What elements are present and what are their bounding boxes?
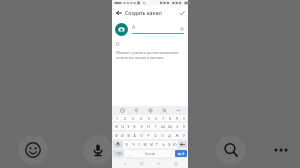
button[interactable]: Back: [120, 159, 129, 168]
button[interactable]: А: [131, 132, 138, 139]
button[interactable]: У: [125, 123, 131, 130]
staticText: 0: [183, 116, 185, 121]
staticText: 2: [124, 116, 126, 121]
button[interactable]: Ч: [130, 141, 136, 148]
button[interactable]: Home: [137, 159, 146, 168]
button[interactable]: Р: [145, 132, 152, 139]
button[interactable]: Backspace: [178, 141, 187, 148]
button[interactable]: A: [132, 24, 184, 34]
button[interactable]: 0: [180, 115, 187, 121]
button[interactable]: 8: [166, 115, 173, 121]
button[interactable]: ,: [124, 150, 132, 157]
button[interactable]: .: [167, 150, 175, 157]
button[interactable]: Д: [166, 132, 173, 139]
button[interactable]: Х: [180, 123, 187, 130]
button[interactable]: 5: [145, 115, 152, 121]
staticText: Ы: [121, 133, 124, 138]
button[interactable]: Л: [159, 132, 166, 139]
button[interactable]: 4: [137, 115, 145, 121]
button[interactable]: Русский: [132, 150, 167, 157]
staticText: 7: [162, 116, 164, 121]
button[interactable]: П: [138, 132, 145, 139]
staticText: И: [150, 142, 153, 147]
button[interactable]: Done: [175, 6, 188, 19]
button[interactable]: Shift: [113, 141, 123, 148]
button[interactable]: Ш: [159, 123, 166, 130]
button[interactable]: О: [152, 132, 159, 139]
button[interactable]: 9: [173, 115, 180, 121]
button[interactable]: Г: [152, 123, 159, 130]
staticText: Е: [141, 124, 143, 129]
staticText: Й: [115, 124, 118, 129]
button[interactable]: Reactions: [18, 135, 48, 165]
button[interactable]: Б: [166, 141, 172, 148]
button[interactable]: 3: [129, 115, 137, 121]
button[interactable]: Ы: [119, 132, 125, 139]
button[interactable]: Щ: [166, 123, 173, 130]
button[interactable]: С: [136, 141, 142, 148]
button[interactable]: Я: [123, 141, 130, 148]
button[interactable]: More options: [266, 135, 296, 165]
button[interactable]: Ц: [119, 123, 125, 130]
staticText: Х: [183, 124, 185, 129]
button[interactable]: К: [131, 123, 138, 130]
button[interactable]: Ь: [160, 141, 166, 148]
button[interactable]: 2: [121, 115, 129, 121]
button[interactable]: Т: [154, 141, 160, 148]
staticText: Ш: [161, 124, 165, 129]
button[interactable]: И: [148, 141, 154, 148]
staticText: В: [127, 133, 130, 138]
button[interactable]: Search: [216, 135, 246, 165]
staticText: Б: [168, 142, 171, 147]
button[interactable]: О: [116, 41, 120, 47]
staticText: Ь: [162, 142, 165, 147]
staticText: З: [176, 124, 178, 129]
staticText: 1: [116, 116, 118, 121]
staticText: У: [127, 124, 130, 129]
staticText: Т: [156, 142, 158, 147]
button[interactable]: Ю: [172, 141, 178, 148]
button[interactable]: Recents: [154, 159, 163, 168]
staticText: A: [132, 24, 136, 31]
button[interactable]: Е: [138, 123, 145, 130]
button[interactable]: Settings: [146, 106, 154, 114]
staticText: 5: [148, 116, 150, 121]
button[interactable]: 6: [152, 115, 159, 121]
button[interactable]: М: [142, 141, 148, 148]
button[interactable]: Set channel photo: [115, 23, 128, 36]
button[interactable]: 1: [113, 115, 121, 121]
button[interactable]: З: [173, 123, 180, 130]
staticText: Э: [182, 133, 185, 138]
button[interactable]: 7: [159, 115, 166, 121]
button[interactable]: Microphone: [83, 135, 113, 165]
button[interactable]: В: [125, 132, 131, 139]
staticText: Русский: [145, 152, 155, 156]
staticText: 8: [169, 116, 171, 121]
button[interactable]: Enter: [175, 150, 187, 157]
staticText: С: [138, 142, 141, 147]
staticText: П: [140, 133, 143, 138]
button[interactable]: Search: [160, 106, 168, 114]
button[interactable]: GIF: [132, 106, 140, 114]
staticText: 6: [155, 116, 157, 121]
button[interactable]: Stickers: [118, 106, 126, 114]
button[interactable]: ?123: [113, 150, 124, 157]
button[interactable]: Keyboard switcher: [171, 159, 180, 168]
button[interactable]: Ж: [173, 132, 180, 139]
staticText: Р: [147, 133, 150, 138]
button[interactable]: Н: [145, 123, 152, 130]
button[interactable]: Э: [180, 132, 187, 139]
staticText: Л: [161, 133, 164, 138]
staticText: К: [133, 124, 136, 129]
staticText: Д: [168, 133, 171, 138]
button[interactable]: Й: [113, 123, 119, 130]
staticText: А: [133, 133, 136, 138]
staticText: 4: [140, 116, 142, 121]
staticText: Щ: [168, 124, 172, 129]
staticText: О: [154, 133, 157, 138]
button[interactable]: More: [174, 106, 182, 114]
staticText: Ф: [115, 133, 118, 138]
staticText: 3: [132, 116, 134, 121]
button[interactable]: Ф: [113, 132, 119, 139]
button[interactable]: Back: [112, 6, 125, 19]
